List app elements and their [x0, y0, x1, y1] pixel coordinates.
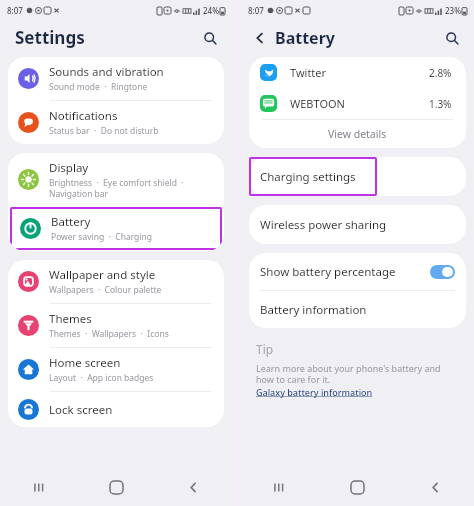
button[interactable]: View details — [249, 120, 466, 148]
button[interactable]: Themes — [8, 304, 224, 347]
staticText: Themes · Wallpapers · Icons — [49, 328, 169, 340]
button[interactable]: Wallpaper and style — [8, 260, 224, 303]
staticText: Tip — [256, 341, 274, 357]
staticText: Power saving · Charging — [51, 231, 152, 243]
staticText: 24% — [203, 5, 219, 16]
staticText: Notifications — [49, 108, 118, 124]
button[interactable]: Wireless power sharing — [249, 205, 466, 244]
button[interactable]: Twitter — [249, 57, 466, 88]
staticText: WEBTOON — [290, 96, 345, 111]
staticText: Display — [49, 160, 89, 176]
button[interactable]: Recents — [0, 469, 78, 506]
staticText: Battery information — [260, 302, 367, 318]
staticText: Charging settings — [260, 169, 356, 185]
button[interactable]: Search — [199, 27, 221, 49]
staticText: Sounds and vibration — [49, 64, 164, 80]
staticText: 2.8% — [429, 66, 452, 80]
button[interactable]: Home — [78, 469, 155, 506]
button[interactable]: Back — [250, 28, 270, 48]
staticText: 8:07 — [7, 5, 23, 16]
staticText: Galaxy battery information — [256, 386, 373, 398]
staticText: Settings — [15, 26, 85, 49]
staticText: Themes — [49, 311, 92, 327]
staticText: Twitter — [290, 65, 327, 80]
button[interactable]: Home screen — [8, 348, 224, 391]
button[interactable]: Back — [396, 469, 474, 506]
staticText: Lock screen — [49, 402, 113, 418]
staticText: Show battery percentage — [260, 264, 396, 280]
staticText: Battery — [51, 214, 91, 230]
button[interactable]: Charging settings — [249, 157, 466, 196]
staticText: Brightness · Eye comfort shield · Naviga… — [49, 177, 184, 199]
staticText: 1.3% — [429, 97, 452, 111]
staticText: 23% — [445, 5, 461, 16]
button[interactable]: Recents — [241, 469, 318, 506]
button[interactable]: WEBTOON — [249, 88, 466, 119]
button[interactable]: Home — [318, 469, 396, 506]
button[interactable]: Show battery percentage — [249, 253, 466, 290]
staticText: Battery — [275, 27, 335, 49]
staticText: Learn more about your phone's battery an… — [256, 362, 441, 386]
button[interactable]: Galaxy battery information — [256, 386, 373, 398]
button[interactable]: Notifications — [8, 101, 224, 144]
staticText: 8:07 — [248, 5, 264, 16]
button[interactable]: Battery — [10, 207, 222, 250]
staticText: Wallpapers · Colour palette — [49, 284, 162, 296]
staticText: Wireless power sharing — [260, 217, 387, 233]
button[interactable]: Search — [441, 27, 463, 49]
staticText: Sound mode · Ringtone — [49, 81, 148, 93]
button[interactable]: Display — [8, 153, 224, 206]
staticText: Status bar · Do not disturb — [49, 125, 159, 137]
button[interactable]: Back — [155, 469, 232, 506]
staticText: Wallpaper and style — [49, 267, 156, 283]
button[interactable]: Sounds and vibration — [8, 57, 224, 100]
staticText: Home screen — [49, 355, 121, 371]
staticText: Layout · App icon badges — [49, 372, 154, 384]
button[interactable]: Lock screen — [8, 392, 224, 427]
button[interactable]: Battery information — [249, 291, 466, 328]
staticText: View details — [328, 127, 387, 141]
